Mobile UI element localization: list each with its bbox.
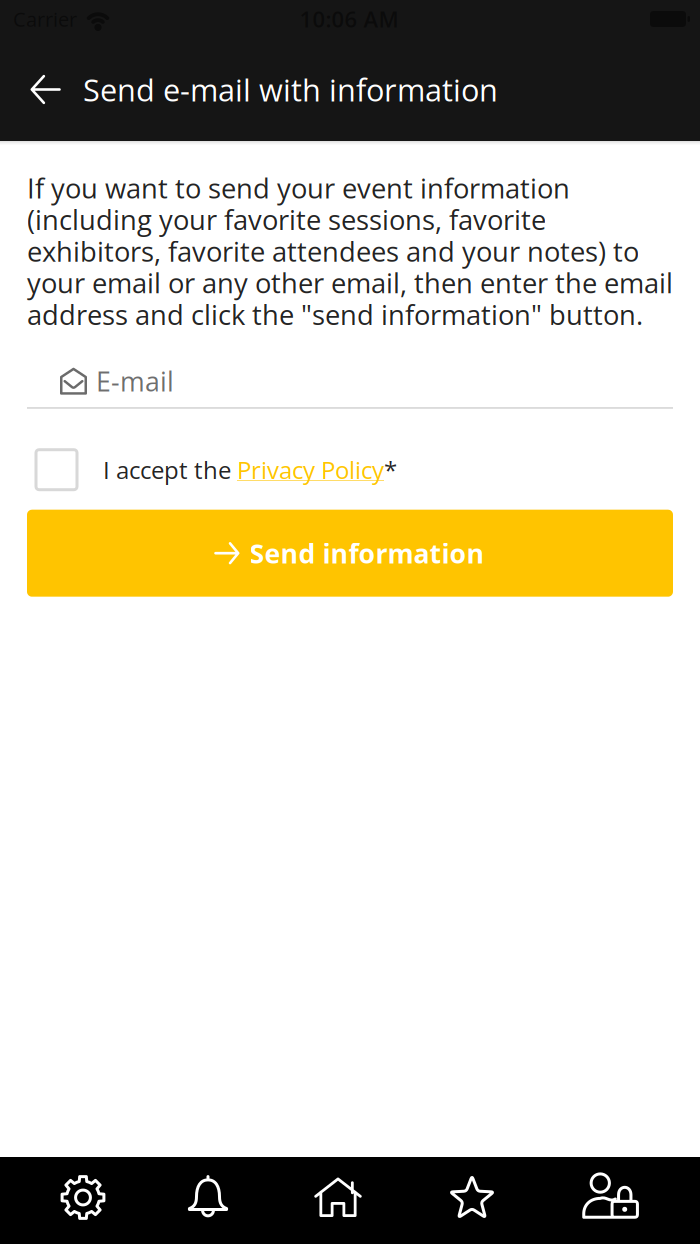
button[interactable]: Send information [27, 510, 673, 597]
button[interactable]: Notifications [156, 1157, 260, 1237]
button[interactable]: Home [260, 1157, 416, 1237]
button[interactable]: I accept the [27, 442, 673, 498]
staticText: Privacy Policy [237, 453, 384, 486]
staticText: Send information [249, 535, 484, 571]
staticText: * [384, 453, 397, 486]
button[interactable]: Favorites [416, 1157, 528, 1237]
button[interactable]: Back [7, 56, 83, 122]
button[interactable]: Settings [10, 1157, 156, 1237]
button[interactable]: Account [528, 1157, 692, 1237]
staticText: If you want to send your event informati… [27, 172, 673, 330]
staticText: 10:06 AM [299, 4, 398, 34]
staticText: E-mail [96, 363, 174, 399]
staticText: I accept the [103, 453, 237, 486]
staticText: Send e-mail with information [83, 69, 498, 110]
